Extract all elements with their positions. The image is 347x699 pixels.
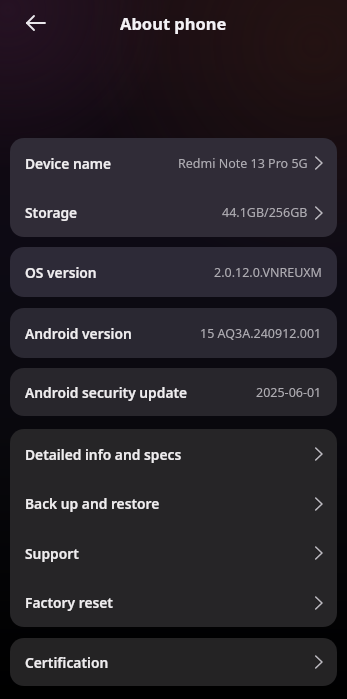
staticText: About phone <box>120 12 227 34</box>
staticText: Android version <box>25 324 132 343</box>
staticText: Factory reset <box>25 593 113 612</box>
button[interactable]: OS version <box>10 247 337 297</box>
staticText: Certification <box>25 653 109 672</box>
button[interactable] <box>18 6 52 40</box>
staticText: 15 AQ3A.240912.001 <box>200 325 322 342</box>
button[interactable]: Factory reset <box>10 578 337 627</box>
staticText: OS version <box>25 263 97 282</box>
button[interactable]: Android security update <box>10 368 337 416</box>
button[interactable]: Support <box>10 528 337 578</box>
staticText: Support <box>25 544 79 563</box>
button[interactable]: Android version <box>10 308 337 358</box>
button[interactable]: Device name <box>10 138 337 188</box>
button[interactable]: Certification <box>10 638 337 686</box>
staticText: Android security update <box>25 383 188 402</box>
button[interactable]: Detailed info and specs <box>10 429 337 479</box>
staticText: 2.0.12.0.VNREUXM <box>214 264 322 281</box>
staticText: 44.1GB/256GB <box>222 204 308 221</box>
staticText: Device name <box>25 154 112 173</box>
staticText: Storage <box>25 203 78 222</box>
button[interactable]: Back up and restore <box>10 479 337 528</box>
staticText: Redmi Note 13 Pro 5G <box>178 155 308 172</box>
staticText: 2025-06-01 <box>256 384 322 401</box>
staticText: Detailed info and specs <box>25 445 182 464</box>
staticText: Back up and restore <box>25 494 160 513</box>
button[interactable]: Storage <box>10 188 337 237</box>
